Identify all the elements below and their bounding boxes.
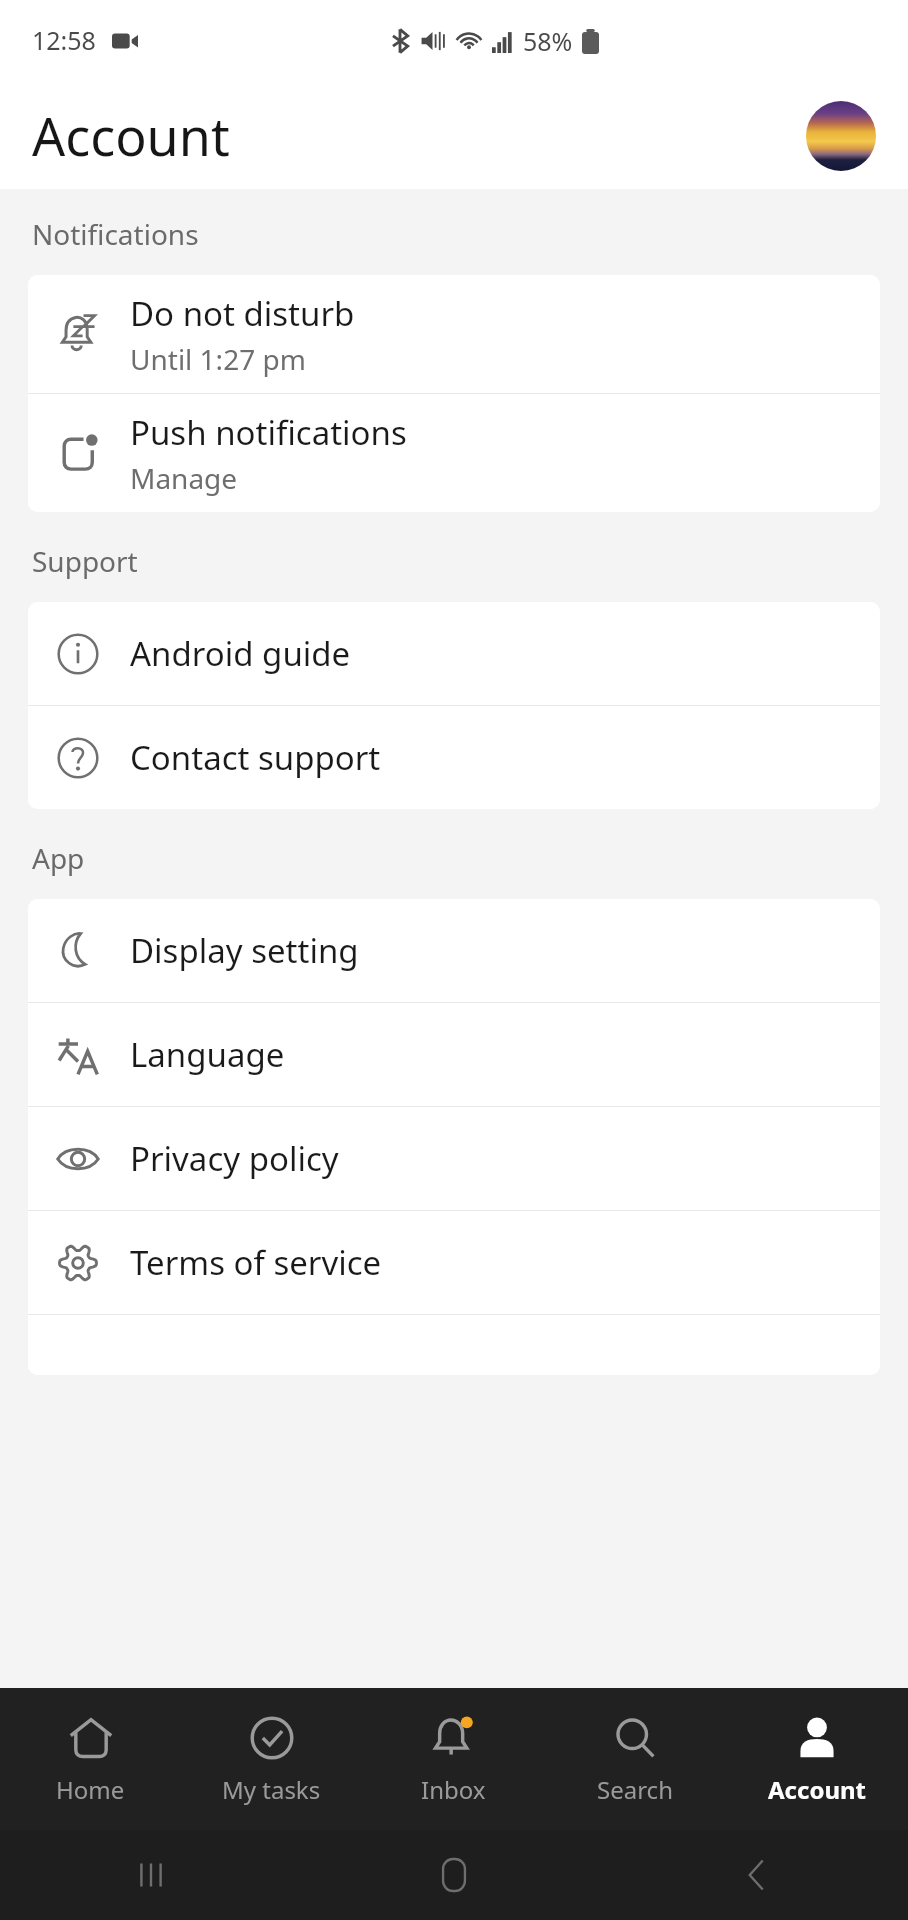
button[interactable]: Push notifications — [28, 394, 880, 512]
staticText: Home — [56, 1773, 125, 1806]
staticText: Push notifications — [130, 410, 407, 455]
staticText: Until 1:27 pm — [130, 340, 306, 378]
staticText: 58% — [523, 24, 573, 58]
staticText: Android guide — [130, 631, 351, 676]
staticText: Language — [130, 1032, 285, 1077]
staticText: Notifications — [32, 215, 199, 253]
staticText: Display setting — [130, 928, 359, 973]
button[interactable]: Android guide — [28, 602, 880, 705]
button[interactable]: Home — [302, 1830, 605, 1920]
staticText: Search — [597, 1773, 673, 1806]
button[interactable]: Back — [605, 1830, 908, 1920]
button[interactable]: Display setting — [28, 899, 880, 1002]
staticText: Account — [768, 1773, 866, 1806]
staticText: Contact support — [130, 735, 381, 780]
button[interactable]: Profile — [806, 101, 876, 171]
button[interactable]: Privacy policy — [28, 1107, 880, 1210]
staticText: My tasks — [222, 1773, 321, 1806]
staticText: Do not disturb — [130, 291, 355, 336]
staticText: Support — [32, 542, 138, 580]
button[interactable]: Search — [544, 1688, 726, 1830]
button[interactable]: Account — [726, 1688, 908, 1830]
staticText: Inbox — [421, 1773, 486, 1806]
staticText: Account — [32, 100, 230, 171]
button[interactable]: Home — [0, 1688, 181, 1830]
button[interactable]: Language — [28, 1003, 880, 1106]
staticText: Manage — [130, 459, 238, 497]
button[interactable]: Recents — [0, 1830, 302, 1920]
button[interactable]: Contact support — [28, 706, 880, 809]
staticText: Terms of service — [130, 1240, 382, 1285]
staticText: App — [32, 839, 85, 877]
button[interactable]: Do not disturb — [28, 275, 880, 393]
button[interactable]: Inbox — [362, 1688, 544, 1830]
button[interactable]: Terms of service — [28, 1211, 880, 1314]
staticText: 12:58 — [32, 23, 96, 57]
staticText: Privacy policy — [130, 1136, 339, 1181]
button[interactable]: My tasks — [181, 1688, 362, 1830]
